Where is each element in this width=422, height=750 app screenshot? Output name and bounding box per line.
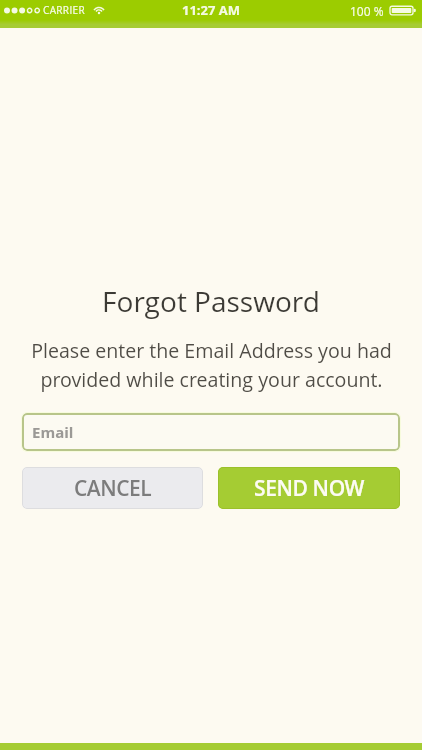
staticText: CARRIER: [43, 3, 85, 17]
staticText: 100 %: [350, 3, 384, 17]
staticText: Forgot Password: [102, 282, 320, 320]
staticText: Email: [32, 422, 74, 442]
staticText: Please enter the Email Address you had p…: [31, 337, 392, 393]
staticText: SEND NOW: [254, 474, 365, 503]
button[interactable]: SEND NOW: [218, 467, 400, 509]
button[interactable]: Email: [21, 412, 401, 452]
button[interactable]: CANCEL: [22, 467, 203, 509]
staticText: 11:27 AM: [182, 1, 240, 19]
staticText: CANCEL: [74, 474, 152, 503]
